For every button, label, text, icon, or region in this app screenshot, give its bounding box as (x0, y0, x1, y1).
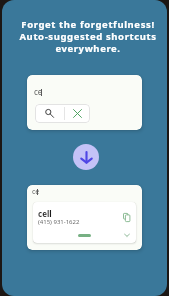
button[interactable]: Expand (122, 230, 132, 240)
staticText: ce (34, 86, 43, 97)
staticText: ce (32, 187, 40, 197)
button[interactable]: Copy (121, 211, 134, 224)
button[interactable]: Download (73, 144, 99, 170)
staticText: cell (38, 208, 52, 219)
staticText: Forget the forgetfulness! Auto-suggested… (19, 18, 157, 55)
button[interactable]: Clear (65, 104, 90, 123)
staticText: (415) 931-1622 (38, 218, 80, 226)
button[interactable]: Search (35, 104, 64, 123)
